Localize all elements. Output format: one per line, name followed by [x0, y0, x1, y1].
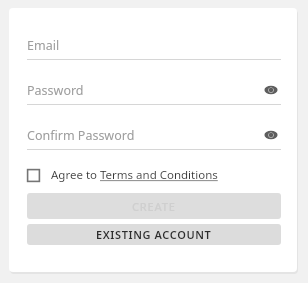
staticText: Password: [27, 82, 84, 99]
staticText: CREATE: [132, 199, 176, 214]
staticText: Confirm Password: [27, 127, 135, 144]
staticText: Email: [27, 37, 60, 54]
button[interactable]: Show password: [261, 80, 281, 100]
button[interactable]: Email: [27, 35, 281, 55]
button[interactable]: Password: [27, 80, 281, 100]
staticText: Agree to Terms and Conditions: [51, 167, 218, 183]
button[interactable]: EXISTING ACCOUNT: [27, 224, 281, 245]
button[interactable]: Agree to Terms and Conditions: [27, 162, 218, 188]
button[interactable]: Confirm Password: [27, 125, 281, 145]
staticText: EXISTING ACCOUNT: [96, 227, 212, 242]
button[interactable]: Show confirm password: [261, 125, 281, 145]
